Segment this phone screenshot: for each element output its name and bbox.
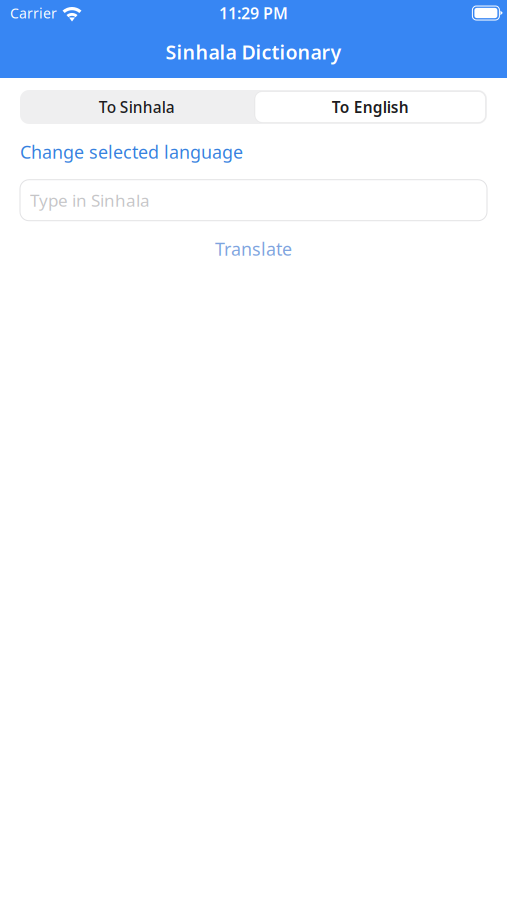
staticText: Sinhala Dictionary	[165, 39, 341, 65]
button[interactable]: Change selected language	[20, 140, 487, 164]
button[interactable]: Translate	[20, 237, 487, 261]
staticText: To English	[332, 97, 409, 117]
staticText: To Sinhala	[99, 97, 175, 117]
staticText: Type in Sinhala	[30, 189, 150, 212]
button[interactable]: To English	[253, 90, 487, 124]
staticText: Change selected language	[20, 140, 243, 164]
staticText: Carrier	[10, 4, 57, 22]
button[interactable]: Type in Sinhala	[20, 180, 487, 221]
staticText: Translate	[215, 237, 292, 261]
button[interactable]: To Sinhala	[20, 90, 253, 124]
staticText: 11:29 PM	[219, 2, 288, 24]
